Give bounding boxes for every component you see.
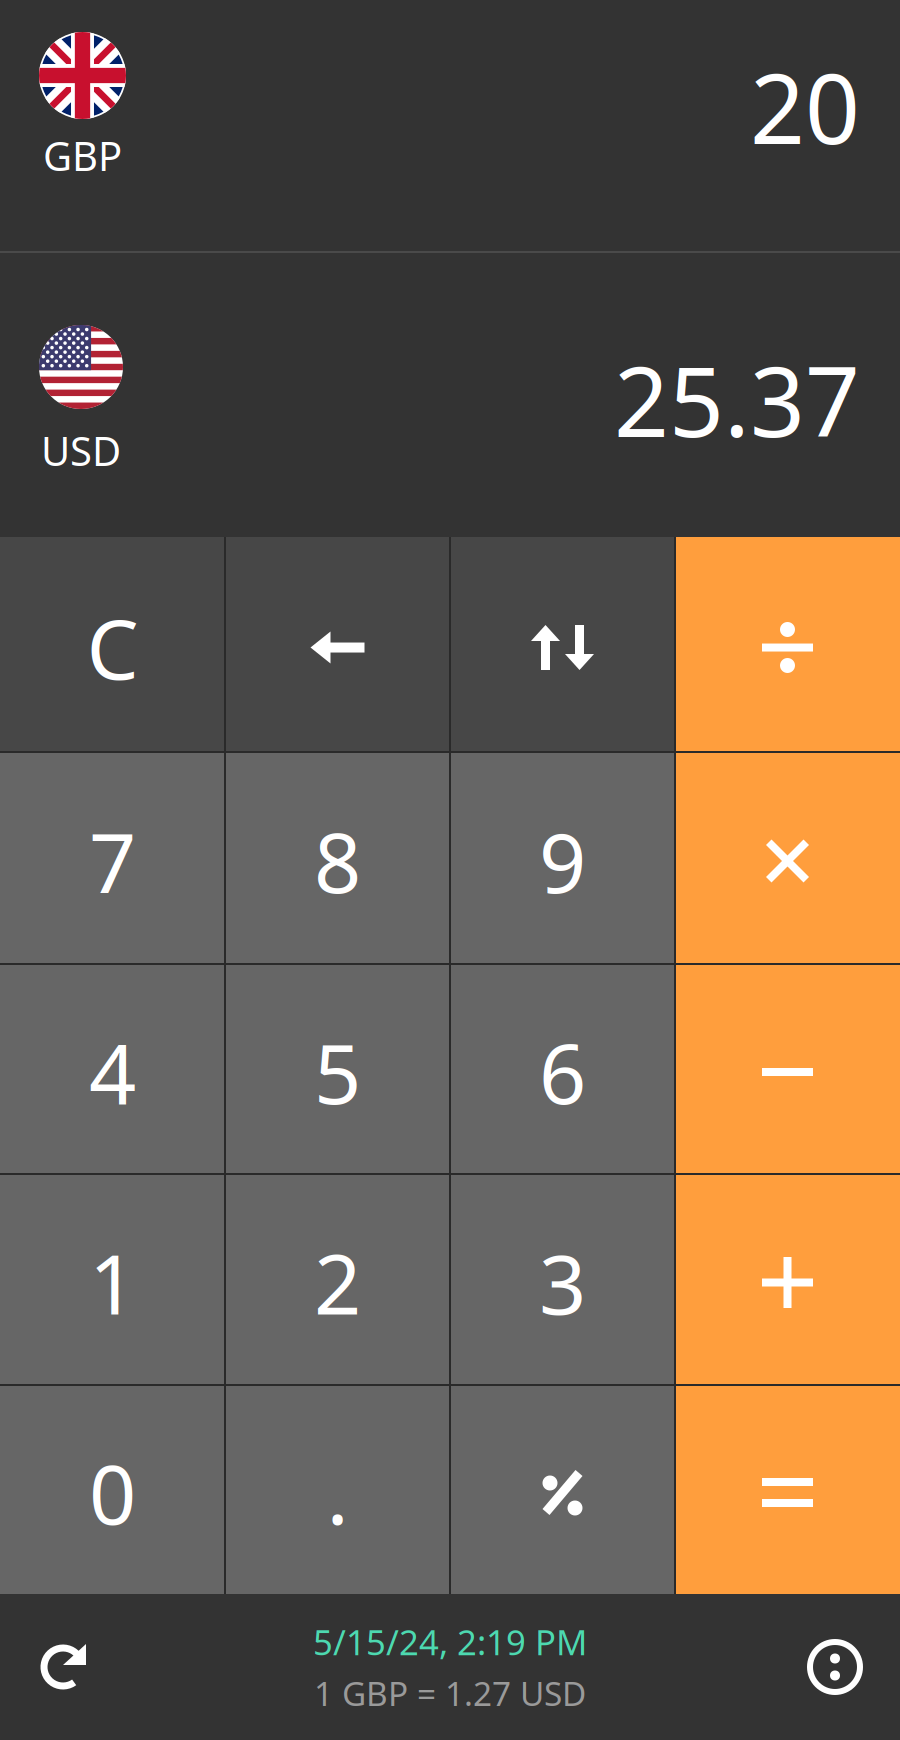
button[interactable]: 0 (0, 1385, 225, 1594)
button[interactable] (225, 537, 450, 752)
button[interactable]: 2 (225, 1174, 450, 1385)
button[interactable]: Refresh rates (0, 1594, 130, 1740)
button[interactable] (675, 537, 900, 752)
staticText: 25.37 (614, 336, 860, 463)
button[interactable]: . (225, 1385, 450, 1594)
button[interactable] (675, 752, 900, 964)
button[interactable]: 7 (0, 752, 225, 964)
button[interactable] (675, 1385, 900, 1594)
button[interactable]: 5 (225, 964, 450, 1174)
staticText: C (86, 593, 138, 702)
staticText: 5/15/24, 2:19 PM (313, 1619, 587, 1665)
button[interactable]: GBP (0, 0, 900, 251)
staticText: 1 GBP = 1.27 USD (314, 1671, 586, 1715)
button[interactable]: 9 (450, 752, 675, 964)
staticText: 7 (89, 806, 136, 916)
staticText: 0 (89, 1438, 136, 1547)
button[interactable] (675, 1174, 900, 1385)
button[interactable] (675, 964, 900, 1174)
button[interactable]: More options (770, 1594, 900, 1740)
staticText: 2 (314, 1228, 361, 1337)
staticText: 5 (314, 1017, 361, 1127)
button[interactable] (450, 1385, 675, 1594)
button[interactable]: 3 (450, 1174, 675, 1385)
staticText: 20 (750, 43, 860, 170)
staticText: 4 (89, 1017, 136, 1127)
staticText: 9 (539, 806, 586, 916)
staticText: USD (41, 424, 121, 477)
button[interactable] (450, 537, 675, 752)
button[interactable]: C (0, 537, 225, 752)
staticText: 1 (89, 1228, 136, 1337)
staticText: 6 (539, 1017, 586, 1127)
staticText: 3 (539, 1228, 586, 1337)
staticText: GBP (43, 129, 122, 182)
button[interactable]: 8 (225, 752, 450, 964)
button[interactable]: 4 (0, 964, 225, 1174)
staticText: 8 (314, 806, 361, 916)
button[interactable]: USD (0, 253, 900, 537)
staticText: . (326, 1438, 348, 1547)
button[interactable]: 6 (450, 964, 675, 1174)
button[interactable]: 1 (0, 1174, 225, 1385)
